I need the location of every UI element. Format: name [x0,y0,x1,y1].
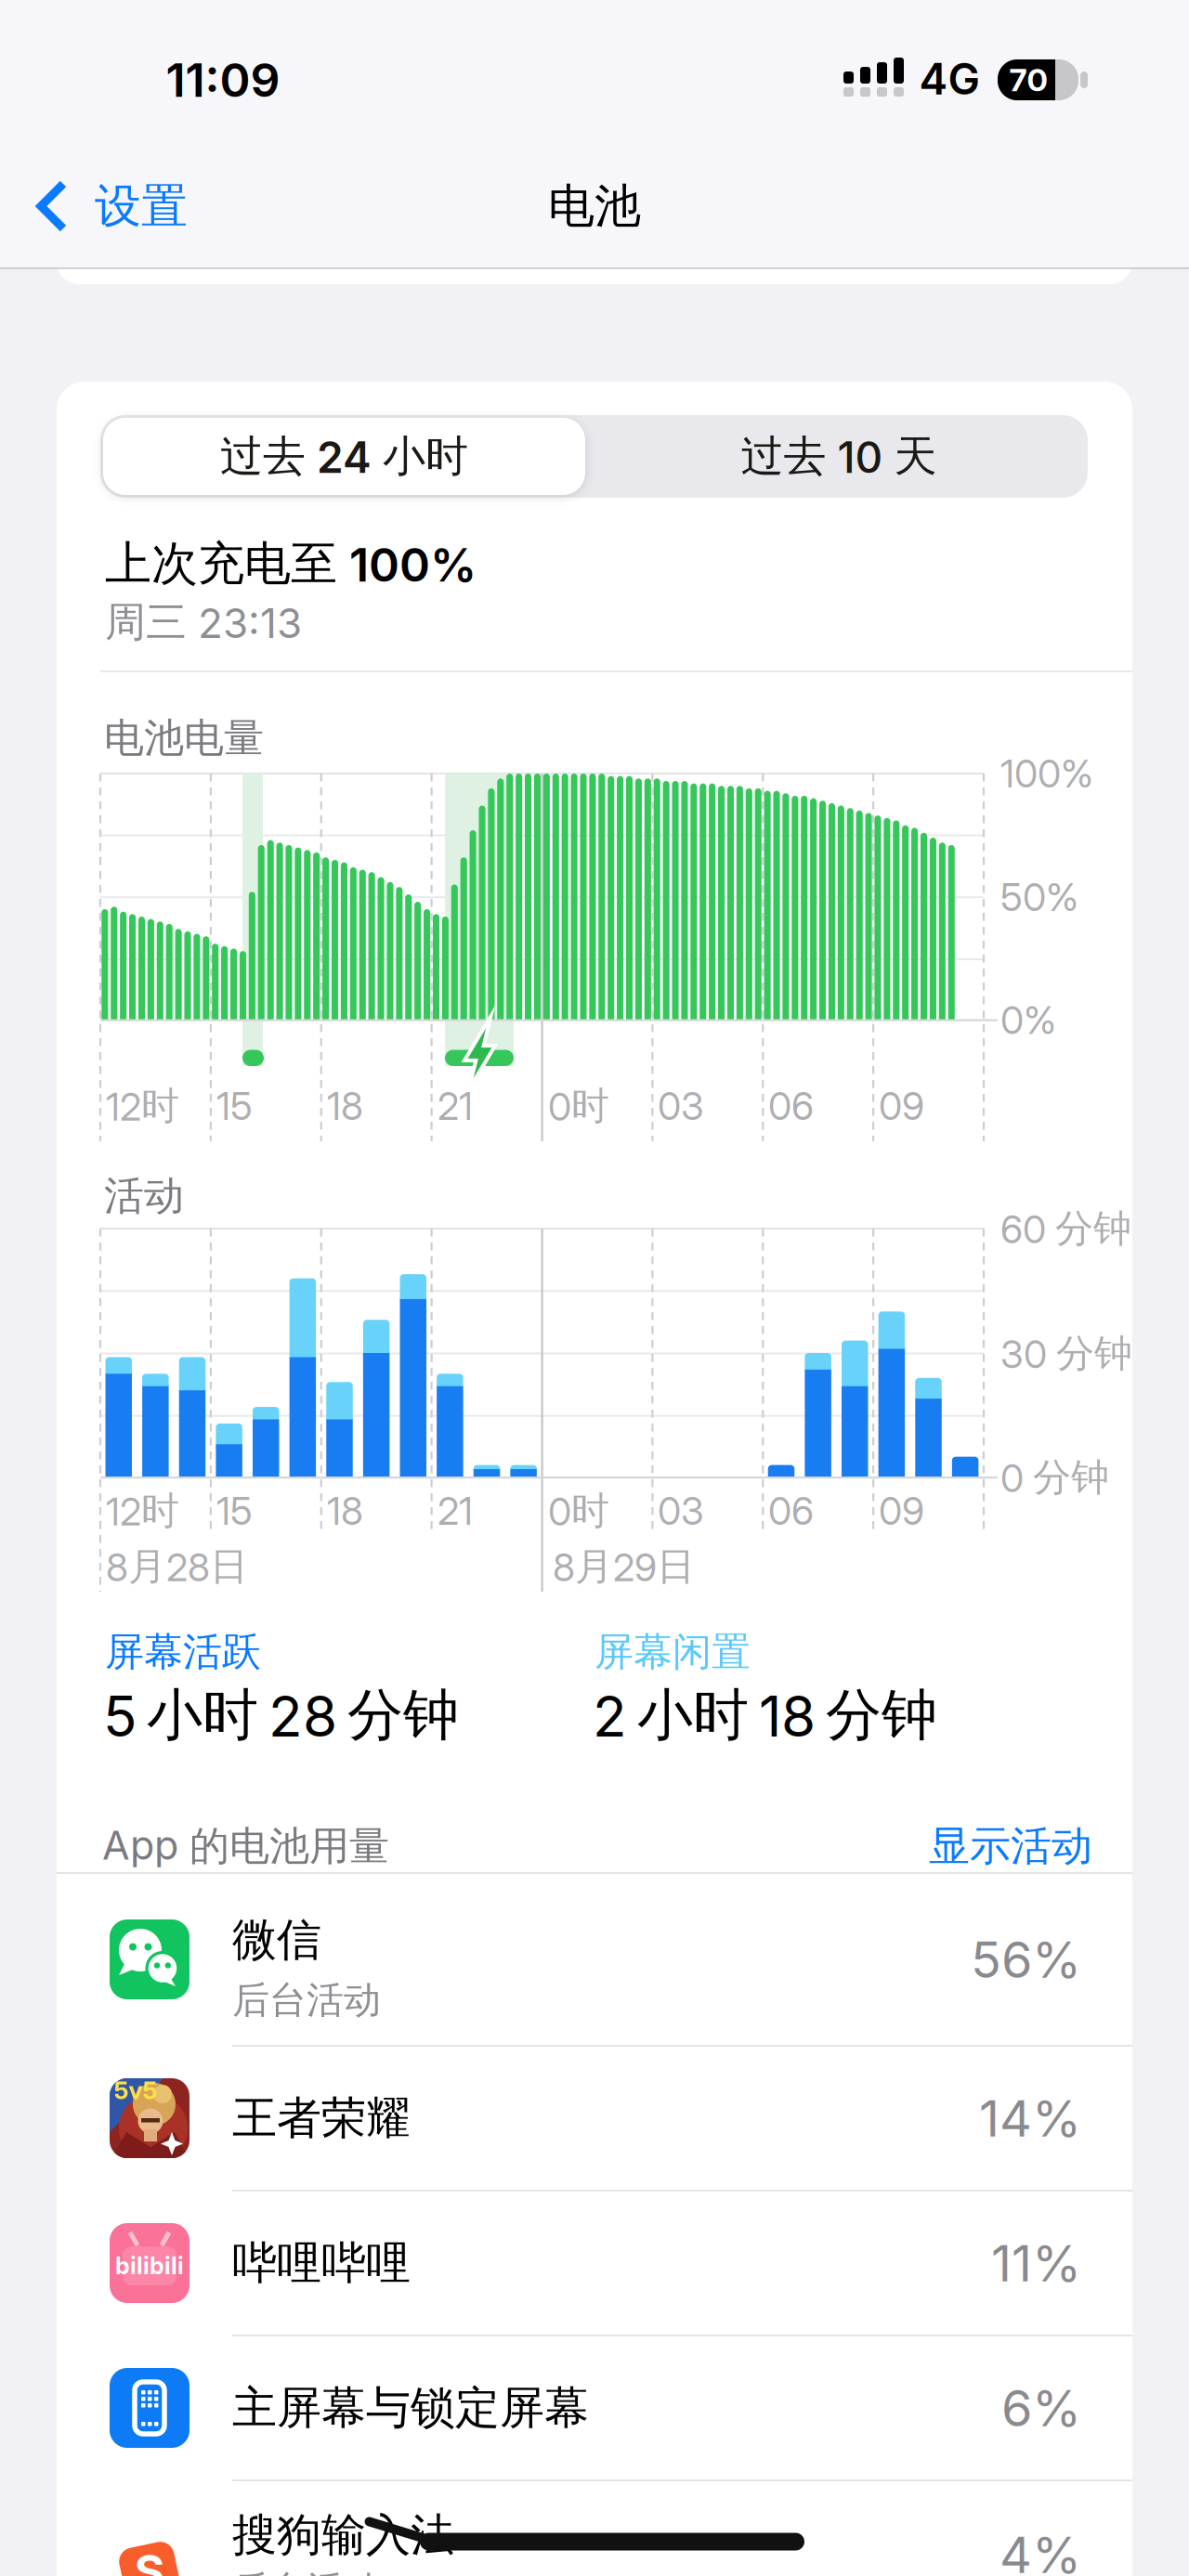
button[interactable]: 主屏幕与锁定屏幕 [57,2335,1132,2480]
staticText: 8月29日 [553,1543,695,1591]
staticText: 5v5 [114,2076,157,2105]
button[interactable]: 显示活动 [814,1826,1092,1867]
staticText: 100% [1000,751,1093,797]
staticText: 搜狗输入法 [232,2507,455,2563]
staticText: 21 [438,1083,473,1129]
staticText: 14% [979,2088,1081,2148]
staticText: 21 [438,1488,473,1534]
staticText: 王者荣耀 [232,2090,411,2146]
staticText: 电池 [548,177,641,235]
staticText: 50% [1000,874,1078,920]
staticText: 屏幕活跃 [105,1627,261,1677]
staticText: 8月28日 [106,1543,248,1591]
button[interactable]: 5v5 [57,2046,1132,2191]
staticText: 活动 [104,1171,184,1221]
staticText: 70 [1009,61,1047,99]
staticText: 30 分钟 [1000,1330,1132,1378]
staticText: 15 [216,1488,253,1534]
staticText: App 的电池用量 [102,1821,389,1871]
button[interactable]: bilibili [57,2191,1132,2335]
staticText: 15 [216,1083,253,1129]
button[interactable]: 过去 24 小时 [100,415,588,498]
staticText: 后台活动 [232,1977,381,2024]
staticText: 56% [971,1929,1081,1990]
staticText: 09 [879,1488,924,1534]
staticText: 电池电量 [104,713,264,763]
staticText: 5 小时 28 分钟 [103,1680,459,1750]
staticText: 03 [658,1488,704,1534]
staticText: S [134,2543,165,2576]
staticText: 0 分钟 [1000,1453,1109,1501]
staticText: 后台活动 [232,2567,381,2576]
staticText: 微信 [232,1912,321,1968]
staticText: 6% [1001,2378,1081,2438]
staticText: 设置 [95,177,188,235]
staticText: 12时 [106,1487,179,1535]
staticText: 06 [768,1488,814,1534]
staticText: 0% [1000,997,1056,1043]
staticText: 18 [327,1488,363,1534]
staticText: 11% [991,2233,1081,2293]
staticText: 周三 23:13 [105,596,302,648]
button[interactable]: S [57,2468,1132,2576]
staticText: 12时 [106,1082,179,1130]
staticText: 哔哩哔哩 [232,2235,411,2291]
staticText: 11:09 [166,52,280,108]
staticText: 显示活动 [929,1820,1092,1872]
staticText: 4% [1000,2524,1081,2576]
staticText: 03 [658,1083,704,1129]
staticText: 06 [768,1083,814,1129]
button[interactable]: 设置 [37,160,260,253]
staticText: 2 小时 18 分钟 [593,1680,937,1750]
staticText: bilibili [115,2252,184,2280]
staticText: 4G [919,53,980,105]
staticText: 屏幕闲置 [594,1627,751,1677]
staticText: 主屏幕与锁定屏幕 [232,2380,589,2436]
button[interactable]: 过去 10 天 [595,415,1083,498]
staticText: 60 分钟 [1000,1205,1131,1253]
staticText: 过去 24 小时 [220,429,468,483]
staticText: 上次充电至 100% [105,534,477,593]
staticText: 过去 10 天 [741,429,937,483]
staticText: 0时 [548,1082,609,1130]
staticText: 09 [879,1083,924,1129]
staticText: 0时 [548,1487,609,1535]
staticText: 18 [327,1083,363,1129]
button[interactable]: 微信 [57,1873,1132,2046]
